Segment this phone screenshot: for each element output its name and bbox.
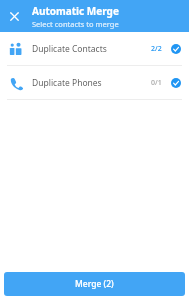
button[interactable]: Merge (2) — [4, 272, 185, 296]
staticText: Duplicate Phones — [32, 77, 102, 89]
staticText: 2/2 — [151, 44, 162, 54]
staticText: Select contacts to merge — [32, 19, 119, 29]
button[interactable]: Toggle selection — [169, 76, 183, 90]
button[interactable]: Duplicate Contacts — [0, 32, 189, 65]
staticText: Automatic Merge — [32, 4, 119, 18]
button[interactable]: Close — [0, 2, 28, 30]
staticText: 0/1 — [151, 78, 162, 88]
button[interactable]: Toggle selection — [169, 42, 183, 56]
button[interactable]: Duplicate Phones — [0, 66, 189, 99]
staticText: Duplicate Contacts — [32, 43, 107, 55]
staticText: Merge (2) — [75, 278, 114, 290]
